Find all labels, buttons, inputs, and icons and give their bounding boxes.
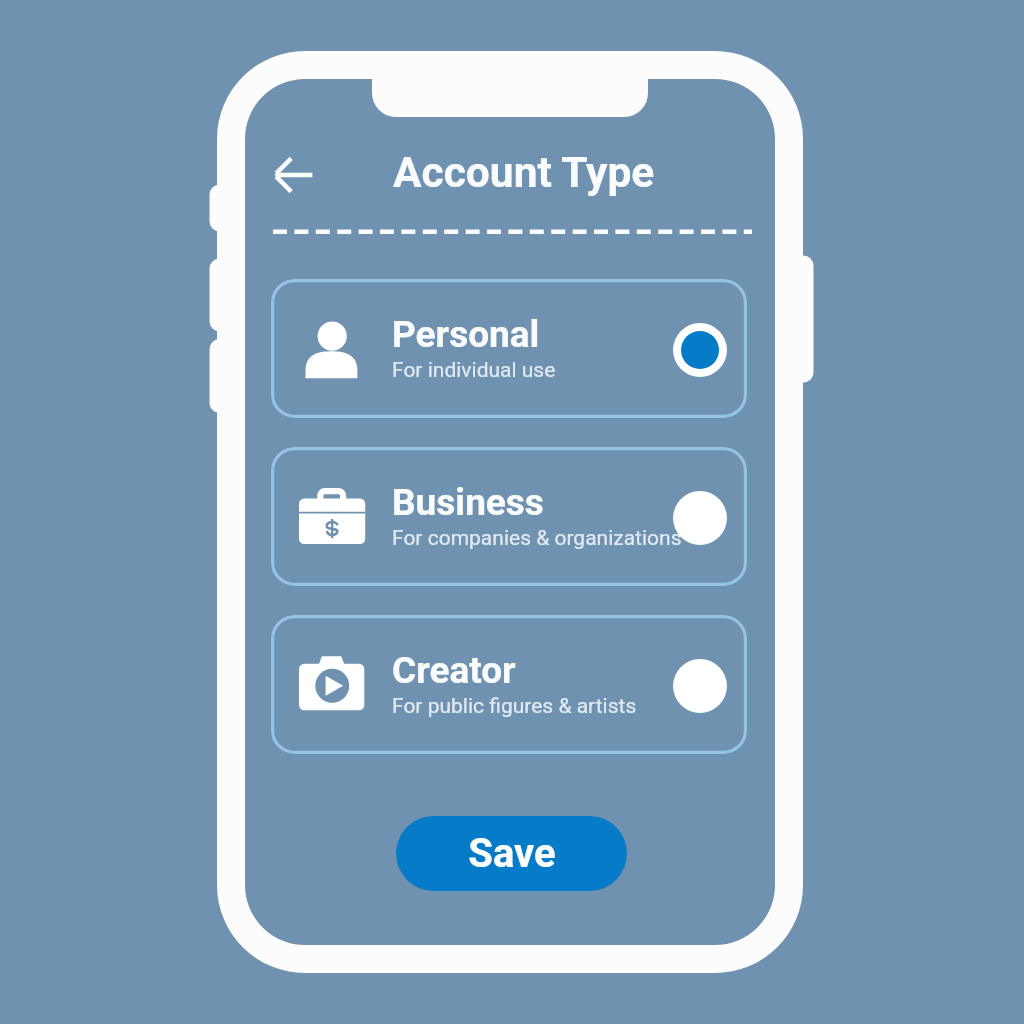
button[interactable]: Back: [262, 147, 326, 211]
staticText: For companies & organizations: [392, 526, 682, 551]
staticText: Business: [392, 481, 544, 524]
staticText: Account Type: [393, 148, 655, 198]
button[interactable]: Save: [396, 816, 627, 891]
staticText: Creator: [392, 649, 516, 692]
button[interactable]: Creator: [271, 615, 747, 754]
button[interactable]: Business: [271, 447, 747, 586]
staticText: Personal: [392, 313, 540, 356]
staticText: Save: [468, 830, 556, 877]
staticText: For individual use: [392, 358, 556, 383]
staticText: For public figures & artists: [392, 694, 637, 719]
button[interactable]: Personal: [271, 279, 747, 418]
